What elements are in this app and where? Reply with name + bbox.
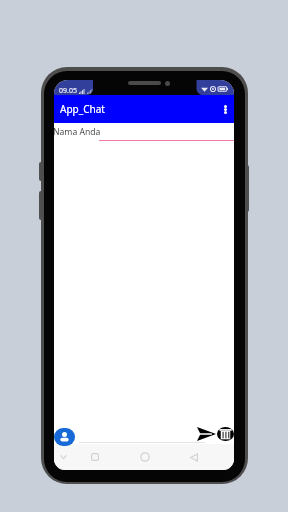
button[interactable]: Delete <box>217 427 234 441</box>
button[interactable]: Recents <box>87 444 102 470</box>
button[interactable]: More options <box>217 101 233 117</box>
button[interactable]: Hide keyboard <box>56 444 71 470</box>
staticText: 09.05 <box>59 86 77 96</box>
button[interactable]: Profile <box>54 428 75 446</box>
button[interactable]: Back <box>186 444 201 470</box>
button[interactable]: Home <box>137 444 152 470</box>
staticText: Nama Anda <box>54 126 101 138</box>
button[interactable]: Send <box>197 427 216 441</box>
staticText: App_Chat <box>60 102 105 116</box>
